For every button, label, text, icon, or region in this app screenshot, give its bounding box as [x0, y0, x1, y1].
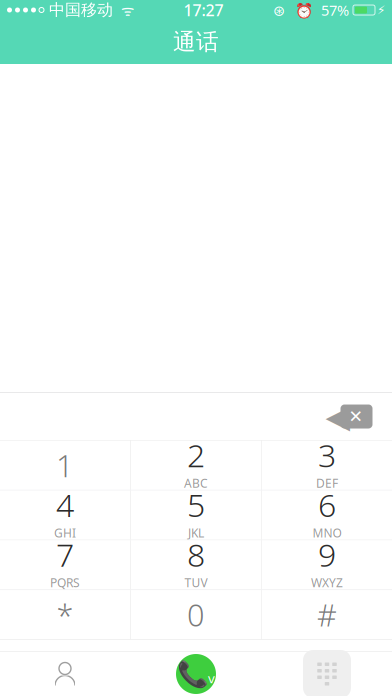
button[interactable]: 8: [131, 540, 261, 589]
staticText: ◀: [325, 398, 350, 435]
staticText: ᯤ: [113, 0, 134, 20]
staticText: *: [57, 594, 74, 635]
staticText: TUV: [184, 575, 207, 591]
button[interactable]: 1: [0, 441, 130, 490]
staticText: MNO: [312, 525, 341, 541]
staticText: 0: [187, 594, 205, 635]
button[interactable]: 4: [0, 491, 130, 540]
button[interactable]: Contacts: [0, 652, 130, 696]
staticText: 2: [187, 434, 205, 476]
staticText: #: [317, 594, 337, 635]
staticText: 3: [318, 434, 336, 476]
button[interactable]: 3: [262, 441, 392, 490]
staticText: 8: [187, 533, 205, 576]
staticText: JKL: [188, 525, 204, 541]
staticText: PQRS: [50, 575, 80, 591]
staticText: 1: [56, 445, 74, 486]
button[interactable]: Delete: [326, 401, 378, 431]
button[interactable]: #: [262, 590, 392, 639]
staticText: ABC: [184, 475, 208, 491]
staticText: DEF: [316, 475, 338, 491]
staticText: 中国移动: [44, 0, 113, 20]
staticText: 4: [56, 483, 74, 526]
button[interactable]: 5: [131, 491, 261, 540]
button[interactable]: 6: [262, 491, 392, 540]
staticText: ✕: [348, 407, 363, 426]
button[interactable]: 9: [262, 540, 392, 589]
staticText: 7: [56, 533, 74, 576]
staticText: ⚡︎: [377, 3, 385, 17]
staticText: 17:27: [183, 0, 223, 21]
staticText: WXYZ: [311, 575, 343, 591]
staticText: 5: [187, 483, 205, 526]
staticText: GHI: [54, 525, 76, 541]
staticText: 📞: [177, 659, 209, 688]
staticText: 6: [318, 483, 336, 526]
button[interactable]: 7: [0, 540, 130, 589]
button[interactable]: Call: [130, 652, 262, 696]
staticText: v: [208, 669, 215, 687]
button[interactable]: 0: [131, 590, 261, 639]
button[interactable]: *: [0, 590, 130, 639]
button[interactable]: Keypad: [262, 652, 392, 696]
staticText: 9: [318, 533, 336, 576]
staticText: ⊛ ⏰ 57%: [273, 0, 349, 20]
staticText: 通话: [173, 28, 219, 56]
button[interactable]: 2: [131, 441, 261, 490]
